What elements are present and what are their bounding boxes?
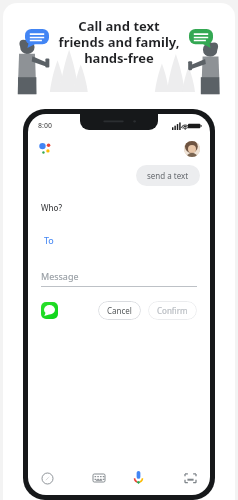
button[interactable]: Voice input: [129, 469, 147, 487]
button[interactable]: Google Assistant: [38, 141, 54, 157]
staticText: 8:00: [38, 121, 52, 131]
button[interactable]: Who?: [39, 200, 65, 215]
staticText: Who?: [41, 202, 63, 213]
button[interactable]: Explore: [40, 471, 55, 486]
button[interactable]: Keyboard: [91, 470, 107, 486]
staticText: send a text: [147, 170, 189, 181]
button[interactable]: Cancel: [98, 301, 141, 320]
staticText: Message: [41, 270, 79, 282]
staticText: Confirm: [157, 305, 188, 316]
staticText: Cancel: [107, 305, 132, 316]
staticText: Call and text friends and family, hands-…: [3, 17, 235, 66]
button[interactable]: Google Lens: [183, 471, 198, 486]
staticText: To: [44, 234, 54, 246]
button[interactable]: Message: [41, 270, 197, 287]
button[interactable]: To: [42, 232, 56, 248]
button[interactable]: Profile: [184, 141, 200, 157]
button[interactable]: Confirm: [148, 301, 197, 320]
button[interactable]: send a text: [136, 165, 200, 186]
button[interactable]: Messages app: [41, 302, 58, 319]
